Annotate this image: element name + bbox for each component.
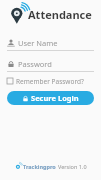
- staticText: Password: [18, 59, 52, 69]
- button[interactable]: User Name: [7, 36, 94, 51]
- button[interactable]: Secure Login: [7, 91, 94, 105]
- staticText: User Name: [18, 38, 58, 48]
- button[interactable]: Password: [7, 57, 94, 72]
- staticText: Remember Password?: [16, 77, 84, 86]
- staticText: Secure Login: [31, 93, 79, 103]
- staticText: Trackingpro: [23, 163, 56, 170]
- staticText: Version 1.0: [58, 163, 87, 170]
- button[interactable]: Remember Password?: [7, 76, 94, 86]
- staticText: Attendance: [28, 7, 92, 22]
- other: Attendance logo: [10, 5, 92, 24]
